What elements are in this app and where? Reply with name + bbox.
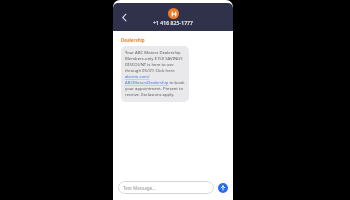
button[interactable]: Your ABC Motors Dealership Members-only … [121,46,189,102]
button[interactable]: Send [218,183,228,193]
staticText: Dealership [121,37,145,43]
staticText: Text Message... [123,185,156,191]
button[interactable]: Back [116,9,132,25]
staticText: +1 416 825-1777 [153,20,194,27]
button[interactable]: +1 416 825-1777 [153,8,194,27]
button[interactable]: Text Message... [118,181,214,194]
staticText: Your ABC Motors Dealership Members-only … [125,50,185,98]
